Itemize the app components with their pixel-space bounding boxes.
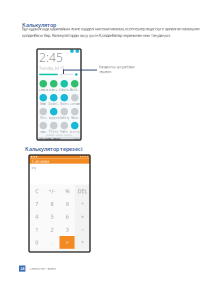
staticText: Tuesday, Jul 17 [39, 65, 64, 71]
staticText: Files [40, 116, 46, 120]
button[interactable]: = [59, 236, 75, 249]
staticText: +/- [48, 188, 55, 195]
staticText: Сымсыз желі қызметі [29, 267, 56, 270]
staticText: Downloads [48, 102, 59, 106]
staticText: таңдаңыз [99, 70, 111, 73]
staticText: Notes [60, 102, 68, 106]
staticText: Бұл құрылғыда қарапайым және күрделі мат… [22, 26, 200, 31]
staticText: 9 [66, 200, 69, 208]
staticText: Camera [39, 88, 48, 92]
staticText: Team Share [48, 88, 59, 92]
staticText: 6 [66, 213, 69, 220]
staticText: 5 [50, 213, 53, 220]
staticText: Contacts [69, 102, 80, 106]
staticText: Settings [69, 130, 80, 133]
staticText: EDIT [74, 137, 79, 141]
button[interactable]: ÷ [75, 198, 90, 210]
staticText: Music [71, 116, 78, 120]
staticText: Eng [31, 166, 36, 170]
staticText: . [51, 239, 52, 246]
button[interactable]: 2 [44, 223, 59, 236]
button[interactable]: % [59, 185, 75, 198]
staticText: C [35, 188, 38, 195]
button[interactable]: 9 [59, 198, 75, 210]
staticText: Калькулятор қолданбасын [99, 65, 135, 69]
staticText: − [81, 226, 84, 233]
staticText: Radio [60, 130, 68, 133]
button[interactable]: + [75, 236, 90, 249]
staticText: × [81, 213, 84, 220]
button[interactable]: +/- [44, 185, 59, 198]
button[interactable]: 3 [59, 223, 75, 236]
staticText: 0 [35, 239, 38, 246]
button[interactable]: 4 [29, 210, 44, 223]
staticText: 1 [35, 226, 38, 233]
staticText: Calculator [59, 88, 69, 92]
staticText: DEL [77, 188, 87, 195]
staticText: ÷ [81, 200, 84, 208]
staticText: 2 [50, 226, 53, 233]
staticText: Support [48, 116, 59, 120]
button[interactable]: 8 [44, 198, 59, 210]
staticText: Калькулятор [22, 21, 56, 28]
staticText: Maps [40, 130, 46, 133]
staticText: 8 [50, 200, 53, 208]
staticText: Калькулятор терезесі [25, 145, 83, 153]
staticText: + [81, 239, 84, 246]
staticText: қолданбасы бар. Калькуляторды ашу үшін Қ… [22, 32, 171, 38]
staticText: 4 [35, 213, 38, 220]
button[interactable]: − [75, 223, 90, 236]
staticText: 7 [35, 200, 38, 208]
staticText: = [66, 239, 69, 246]
staticText: OPTIONS MORE [39, 137, 60, 141]
staticText: Phone [49, 130, 59, 133]
button[interactable]: × [75, 210, 90, 223]
staticText: Email [40, 102, 46, 106]
button[interactable]: 0 [29, 236, 44, 249]
button[interactable]: C [29, 185, 44, 198]
staticText: % [65, 188, 69, 195]
staticText: World Clock [69, 88, 80, 92]
staticText: 3 [66, 226, 69, 233]
staticText: 24 [20, 266, 24, 271]
button[interactable]: 7 [29, 198, 44, 210]
staticText: Calculator [32, 158, 50, 164]
button[interactable]: 5 [44, 210, 59, 223]
button[interactable]: 6 [59, 210, 75, 223]
button[interactable]: 1 [29, 223, 44, 236]
staticText: 2:45 [39, 49, 63, 65]
button[interactable]: DEL [75, 185, 90, 198]
staticText: Gallery [60, 116, 69, 120]
